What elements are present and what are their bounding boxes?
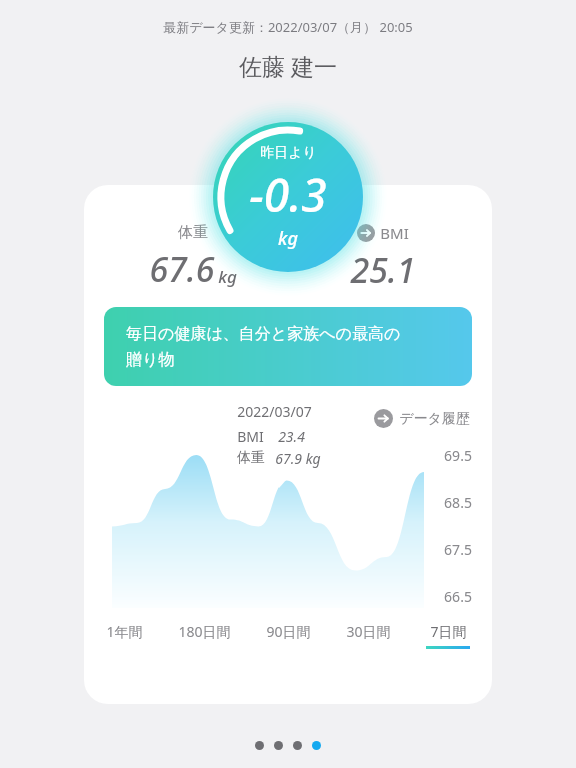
button[interactable] <box>312 741 321 750</box>
button[interactable]: データ履歴 <box>374 409 470 428</box>
button[interactable]: 180日間 <box>170 618 239 653</box>
staticText: 67.9 kg <box>275 449 321 468</box>
staticText: -0.3 <box>249 163 327 226</box>
staticText: kg <box>278 226 298 251</box>
button[interactable] <box>255 741 264 750</box>
button[interactable]: BMI <box>357 223 409 243</box>
staticText: kg <box>218 265 237 288</box>
staticText: 66.5 <box>444 587 472 606</box>
staticText: 68.5 <box>444 493 472 512</box>
staticText: データ履歴 <box>399 410 470 428</box>
staticText: 体重 <box>178 223 208 242</box>
staticText: BMI <box>380 223 409 243</box>
button[interactable]: 1年間 <box>98 618 151 653</box>
staticText: 180日間 <box>178 622 231 641</box>
button[interactable]: 昨日より -0.3 kg <box>249 144 327 251</box>
staticText: 昨日より <box>260 144 317 162</box>
button[interactable] <box>293 741 302 750</box>
staticText: 67.6 <box>149 246 215 292</box>
staticText: 1年間 <box>106 622 143 641</box>
button[interactable] <box>274 741 283 750</box>
staticText: 体重 <box>237 449 265 467</box>
staticText: 90日間 <box>266 622 311 641</box>
staticText: 67.5 <box>444 540 472 559</box>
button[interactable]: 30日間 <box>338 618 399 653</box>
staticText: 23.4 <box>278 427 305 446</box>
staticText: 佐藤 建一 <box>239 50 337 81</box>
button[interactable]: 7日間 <box>418 618 478 653</box>
staticText: 2022/03/07 <box>237 402 312 421</box>
staticText: 7日間 <box>430 622 467 641</box>
button[interactable]: 90日間 <box>258 618 319 653</box>
staticText: 69.5 <box>444 446 472 465</box>
staticText: 最新データ更新：2022/03/07（月） 20:05 <box>163 18 413 36</box>
staticText: BMI <box>237 427 264 446</box>
staticText: 25.1 <box>350 247 416 293</box>
button[interactable]: 毎日の健康は、自分と家族への最高の 贈り物 <box>104 307 472 386</box>
staticText: 毎日の健康は、自分と家族への最高の 贈り物 <box>126 324 401 370</box>
staticText: 30日間 <box>346 622 391 641</box>
